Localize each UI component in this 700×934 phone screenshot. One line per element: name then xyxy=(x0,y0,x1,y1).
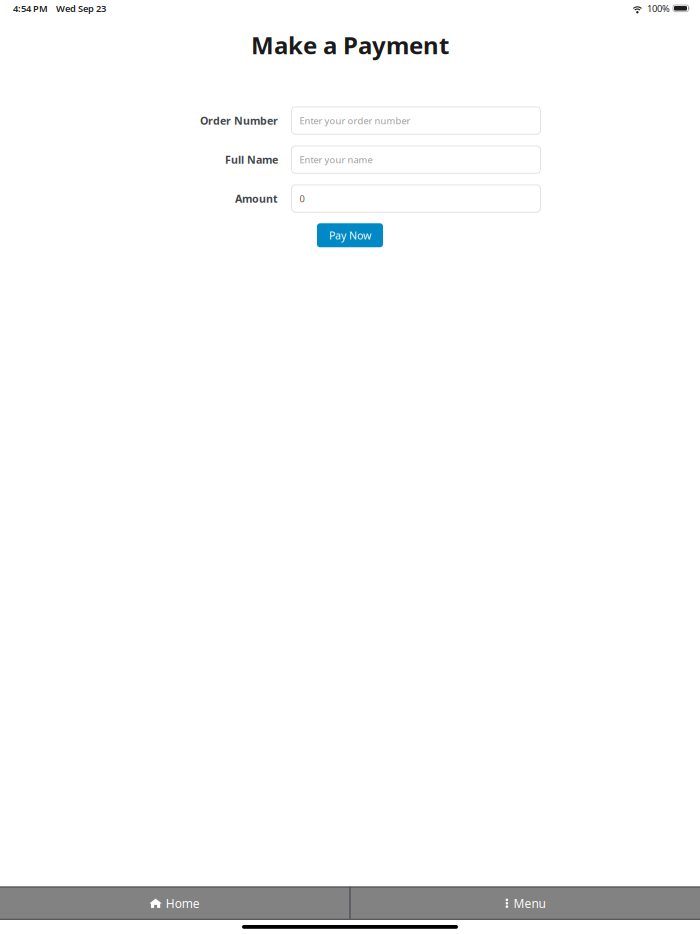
staticText: Amount xyxy=(235,191,278,206)
staticText: Full Name xyxy=(225,152,278,167)
staticText: Home xyxy=(166,895,200,911)
button[interactable]: Full Name xyxy=(291,146,540,173)
staticText: Pay Now xyxy=(329,228,371,242)
button[interactable]: Menu xyxy=(351,886,700,920)
button[interactable]: Amount xyxy=(291,185,540,212)
staticText: 4:54 PM xyxy=(13,2,48,15)
staticText: Order Number xyxy=(200,113,278,128)
staticText: Enter your name xyxy=(299,153,372,166)
staticText: 100% xyxy=(647,2,670,15)
button[interactable]: Home xyxy=(0,886,349,920)
staticText: Enter your order number xyxy=(299,114,410,127)
staticText: 0 xyxy=(299,192,304,205)
staticText: Menu xyxy=(514,895,546,911)
staticText: Wed Sep 23 xyxy=(56,2,106,15)
staticText: Make a Payment xyxy=(251,29,449,61)
button[interactable]: Order Number xyxy=(291,107,540,134)
button[interactable]: Pay Now xyxy=(317,223,383,247)
